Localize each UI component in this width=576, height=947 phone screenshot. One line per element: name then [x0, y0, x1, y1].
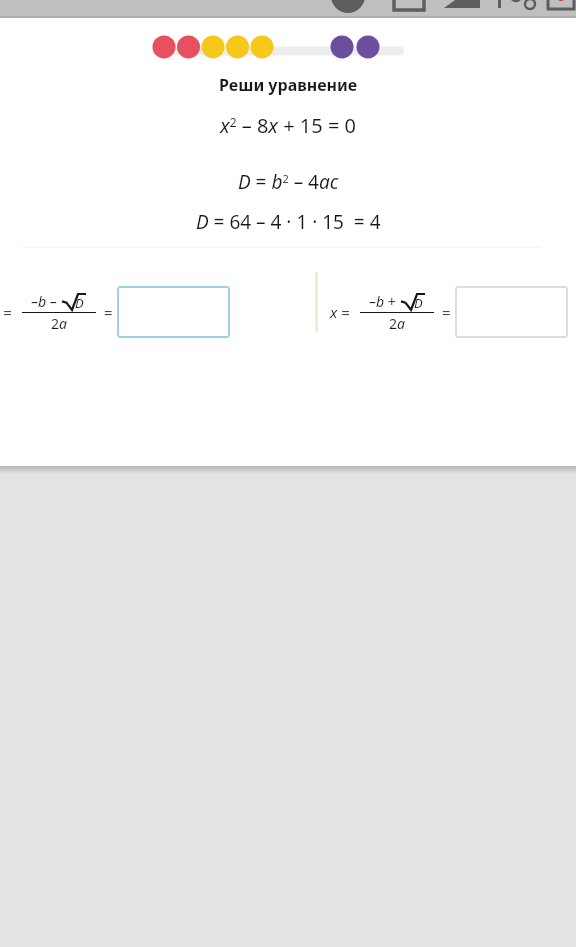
- staticText: –b –: [31, 292, 61, 311]
- staticText: D: [414, 294, 423, 312]
- staticText: x =: [0, 302, 12, 322]
- button[interactable]: Answer input field: [117, 286, 230, 338]
- staticText: =: [104, 302, 113, 322]
- staticText: D: [75, 294, 84, 312]
- staticText: 2a: [389, 314, 405, 333]
- button[interactable]: Progress: [152, 36, 404, 60]
- button[interactable]: Answer input field: [455, 286, 568, 338]
- staticText: 2a: [51, 314, 67, 333]
- staticText: x2 – 8x + 15 = 0: [220, 112, 357, 139]
- staticText: –b +: [369, 292, 400, 311]
- staticText: D = 64 – 4 · 1 · 15 = 4: [196, 209, 381, 235]
- staticText: x =: [330, 302, 350, 322]
- staticText: D = b2 – 4ac: [238, 169, 339, 195]
- staticText: Реши уравнение: [219, 74, 358, 96]
- staticText: =: [442, 302, 451, 322]
